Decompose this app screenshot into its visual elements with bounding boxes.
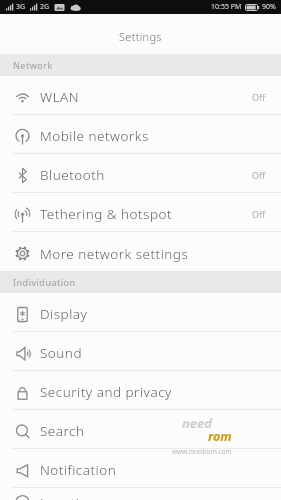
button[interactable]: Sound	[0, 334, 281, 372]
staticText: Security and privacy	[40, 383, 172, 401]
button[interactable]: Bluetooth	[0, 156, 281, 194]
staticText: need	[182, 414, 213, 432]
staticText: Off	[252, 208, 266, 220]
button[interactable]: More network settings	[0, 234, 281, 273]
button[interactable]: Notification	[0, 451, 281, 489]
staticText: Bluetooth	[40, 166, 105, 184]
staticText: Mobile networks	[40, 127, 149, 145]
staticText: Tethering & hotspot	[40, 205, 173, 223]
staticText: 90%	[262, 2, 276, 12]
button[interactable]: Display	[0, 295, 281, 333]
button[interactable]: Mobile networks	[0, 117, 281, 155]
staticText: Location	[40, 494, 97, 500]
button[interactable]: Security and privacy	[0, 373, 281, 411]
staticText: 2G	[40, 2, 50, 12]
button[interactable]: Tethering & hotspot	[0, 195, 281, 233]
staticText: rom	[208, 428, 232, 445]
staticText: Notification	[40, 461, 117, 479]
staticText: Individuation	[13, 276, 76, 288]
staticText: WLAN	[40, 88, 80, 106]
staticText: 3G	[16, 2, 26, 12]
staticText: Off	[252, 169, 266, 181]
staticText: Settings	[119, 29, 162, 44]
staticText: www.needrom.com	[172, 447, 232, 456]
staticText: Sound	[40, 344, 82, 362]
staticText: Off	[252, 91, 266, 103]
button[interactable]: WLAN	[0, 78, 281, 116]
staticText: Display	[40, 305, 88, 323]
button[interactable]: Search	[0, 412, 281, 450]
staticText: More network settings	[40, 245, 189, 263]
staticText: 10:55 PM	[211, 2, 242, 12]
staticText: Network	[13, 59, 53, 71]
staticText: Search	[40, 422, 85, 440]
